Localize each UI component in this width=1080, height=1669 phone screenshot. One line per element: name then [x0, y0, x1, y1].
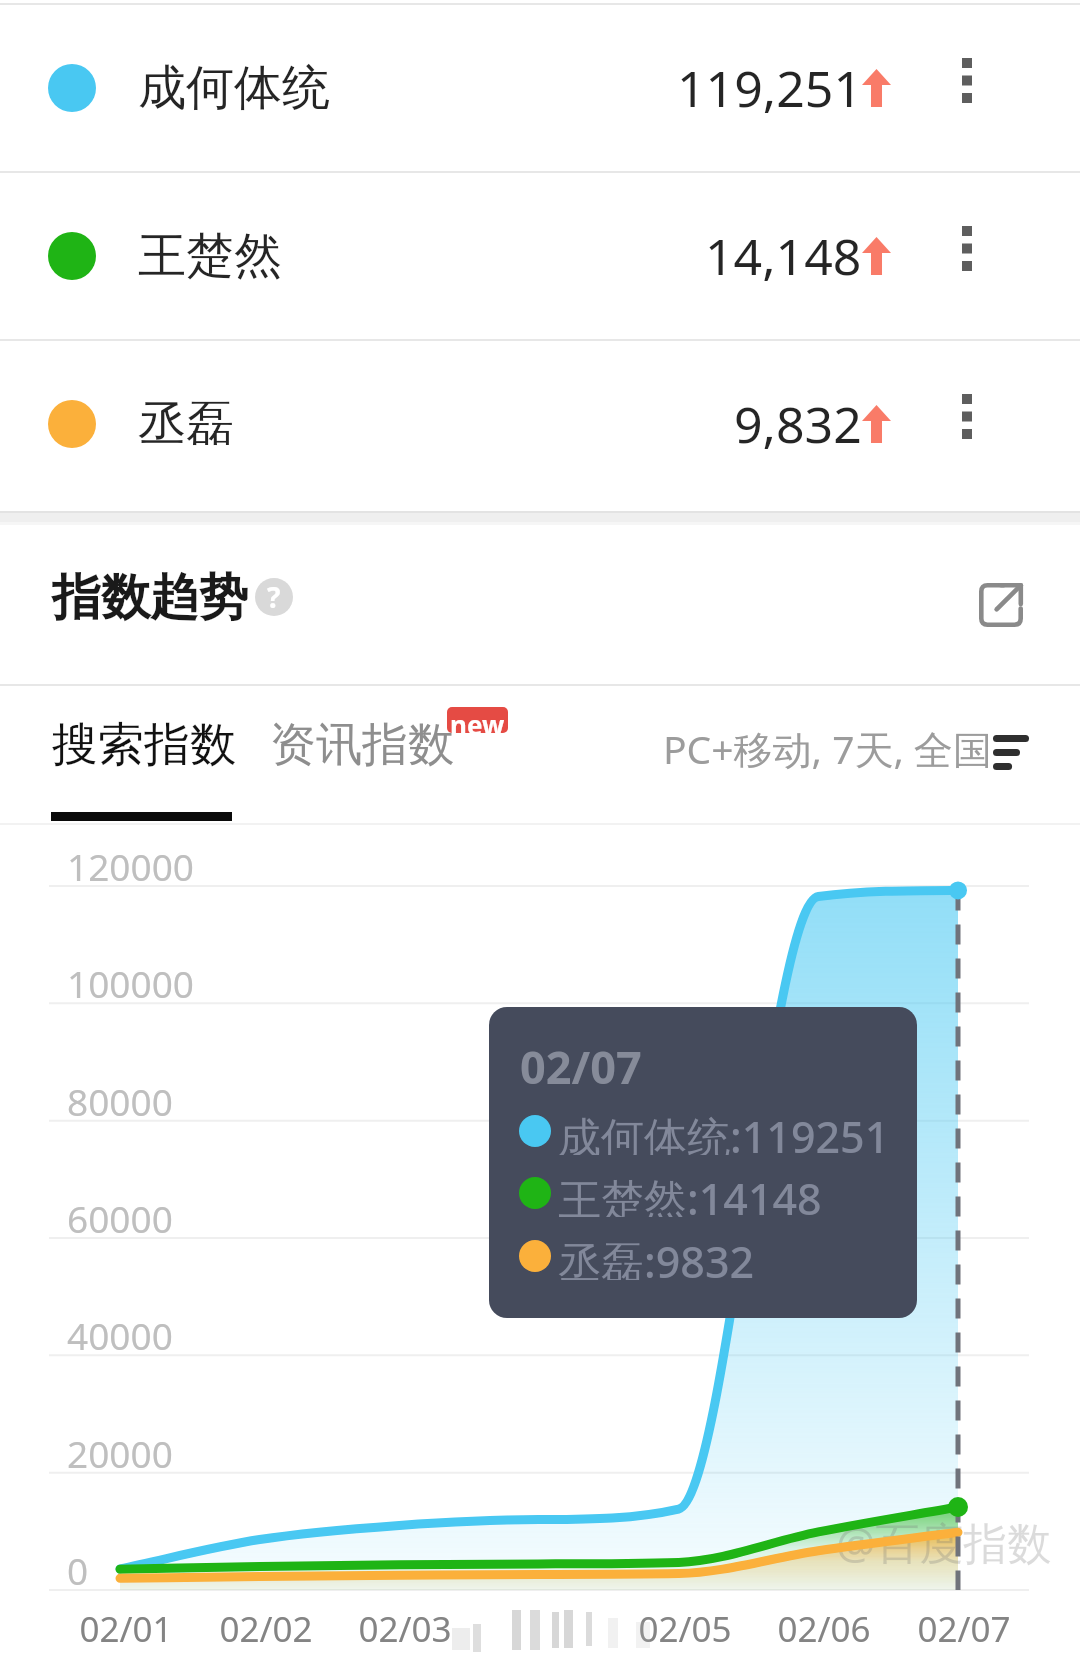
- staticText: 02/03: [315, 1605, 495, 1653]
- button[interactable]: Open in new window: [958, 562, 1044, 648]
- staticText: 100000: [67, 958, 194, 1008]
- button[interactable]: 王楚然: [0, 173, 1080, 339]
- staticText: 02/07: [520, 1036, 642, 1097]
- staticText: 指数趋势: [52, 567, 248, 629]
- staticText: 02/07: [874, 1605, 1054, 1653]
- staticText: 80000: [67, 1076, 173, 1126]
- staticText: 02/01: [36, 1605, 216, 1653]
- staticText: 丞磊: [138, 394, 234, 454]
- button[interactable]: More options: [935, 56, 999, 120]
- staticText: 02/02: [176, 1605, 356, 1653]
- staticText: 119,251: [677, 54, 862, 122]
- staticText: 王楚然:14148: [558, 1169, 822, 1217]
- staticText: 王楚然: [138, 226, 282, 286]
- button[interactable]: More options: [935, 392, 999, 456]
- staticText: 0: [67, 1545, 89, 1595]
- staticText: 20000: [67, 1428, 173, 1478]
- staticText: 丞磊:9832: [558, 1232, 755, 1280]
- button[interactable]: 丞磊: [0, 341, 1080, 507]
- staticText: 搜索指数: [52, 716, 236, 774]
- staticText: 9,832: [734, 390, 862, 458]
- staticText: 02/06: [734, 1605, 914, 1653]
- staticText: @百度指数: [836, 1512, 1052, 1572]
- button[interactable]: More options: [935, 224, 999, 288]
- staticText: 成何体统: [138, 58, 330, 118]
- staticText: 02/05: [595, 1605, 775, 1653]
- staticText: 60000: [67, 1193, 173, 1243]
- button[interactable]: 搜索指数: [52, 686, 236, 774]
- staticText: 14,148: [705, 222, 862, 290]
- staticText: 成何体统:119251: [558, 1107, 890, 1155]
- staticText: 120000: [67, 841, 194, 891]
- button[interactable]: 资讯指数: [270, 686, 454, 774]
- staticText: ?: [267, 578, 281, 616]
- button[interactable]: Help: [255, 578, 293, 616]
- staticText: 40000: [67, 1310, 173, 1360]
- staticText: new: [450, 707, 505, 733]
- button[interactable]: PC+移动, 7天, 全国: [663, 686, 1029, 775]
- staticText: PC+移动, 7天, 全国: [663, 722, 993, 775]
- staticText: 资讯指数: [270, 716, 454, 774]
- button[interactable]: 成何体统: [0, 5, 1080, 171]
